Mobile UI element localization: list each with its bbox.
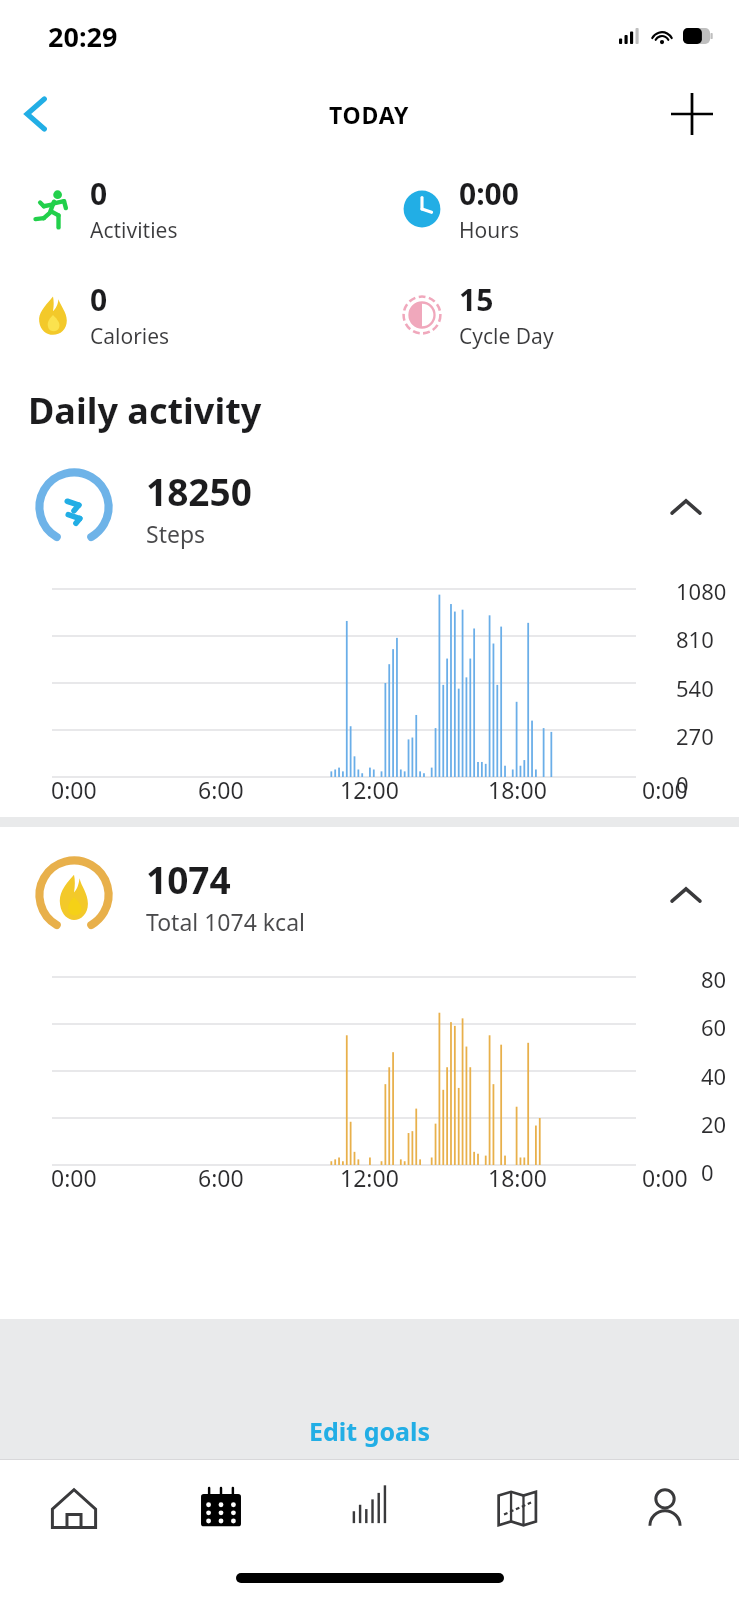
button[interactable]: Edit goals <box>0 1403 739 1459</box>
staticText: 12:00 <box>340 774 399 805</box>
staticText: Activities <box>90 216 178 245</box>
button[interactable]: Collapse <box>651 472 721 542</box>
button[interactable]: 18250 <box>0 457 739 557</box>
button[interactable]: 0:00 <box>369 156 739 262</box>
button[interactable]: Home <box>0 1460 147 1556</box>
staticText: 6:00 <box>198 774 244 805</box>
staticText: Total 1074 kcal <box>146 906 305 937</box>
staticText: 18:00 <box>488 1162 547 1193</box>
button[interactable]: Collapse <box>651 860 721 930</box>
button[interactable]: Statistics <box>295 1460 443 1556</box>
staticText: 0:00 <box>642 774 688 805</box>
staticText: 0:00 <box>642 1162 688 1193</box>
button[interactable]: 15 <box>369 262 739 368</box>
staticText: 0 <box>676 769 689 799</box>
staticText: Calories <box>90 322 170 351</box>
button[interactable]: 0 <box>0 262 369 368</box>
staticText: 1080 <box>676 576 727 606</box>
staticText: Hours <box>459 216 519 245</box>
staticText: 12:00 <box>340 1162 399 1193</box>
staticText: 0:00 <box>51 774 97 805</box>
staticText: 0:00 <box>51 1162 97 1193</box>
staticText: 80 <box>701 964 727 994</box>
button[interactable]: Profile <box>591 1460 739 1556</box>
staticText: 60 <box>701 1012 727 1042</box>
staticText: 810 <box>676 624 714 654</box>
button[interactable]: 0 <box>0 156 369 262</box>
staticText: Steps <box>146 518 206 549</box>
staticText: 20:29 <box>48 18 118 55</box>
staticText: 540 <box>676 673 714 703</box>
staticText: 270 <box>676 721 714 751</box>
staticText: 40 <box>701 1061 727 1091</box>
staticText: 6:00 <box>198 1162 244 1193</box>
button[interactable]: Back <box>8 86 64 142</box>
button[interactable]: Add <box>661 83 723 145</box>
staticText: Daily activity <box>28 386 262 435</box>
staticText: 0 <box>701 1157 714 1187</box>
staticText: 18:00 <box>488 774 547 805</box>
staticText: 18250 <box>146 466 252 516</box>
staticText: 1074 <box>146 854 231 904</box>
staticText: 0:00 <box>459 173 519 214</box>
button[interactable]: Calendar <box>147 1460 295 1556</box>
button[interactable]: 1074 <box>0 845 739 945</box>
staticText: 15 <box>459 279 494 320</box>
staticText: 0 <box>90 173 108 214</box>
staticText: Cycle Day <box>459 322 554 351</box>
button[interactable]: Map <box>443 1460 591 1556</box>
staticText: 20 <box>701 1109 727 1139</box>
staticText: TODAY <box>329 99 410 130</box>
staticText: Edit goals <box>309 1414 431 1448</box>
staticText: 0 <box>90 279 108 320</box>
